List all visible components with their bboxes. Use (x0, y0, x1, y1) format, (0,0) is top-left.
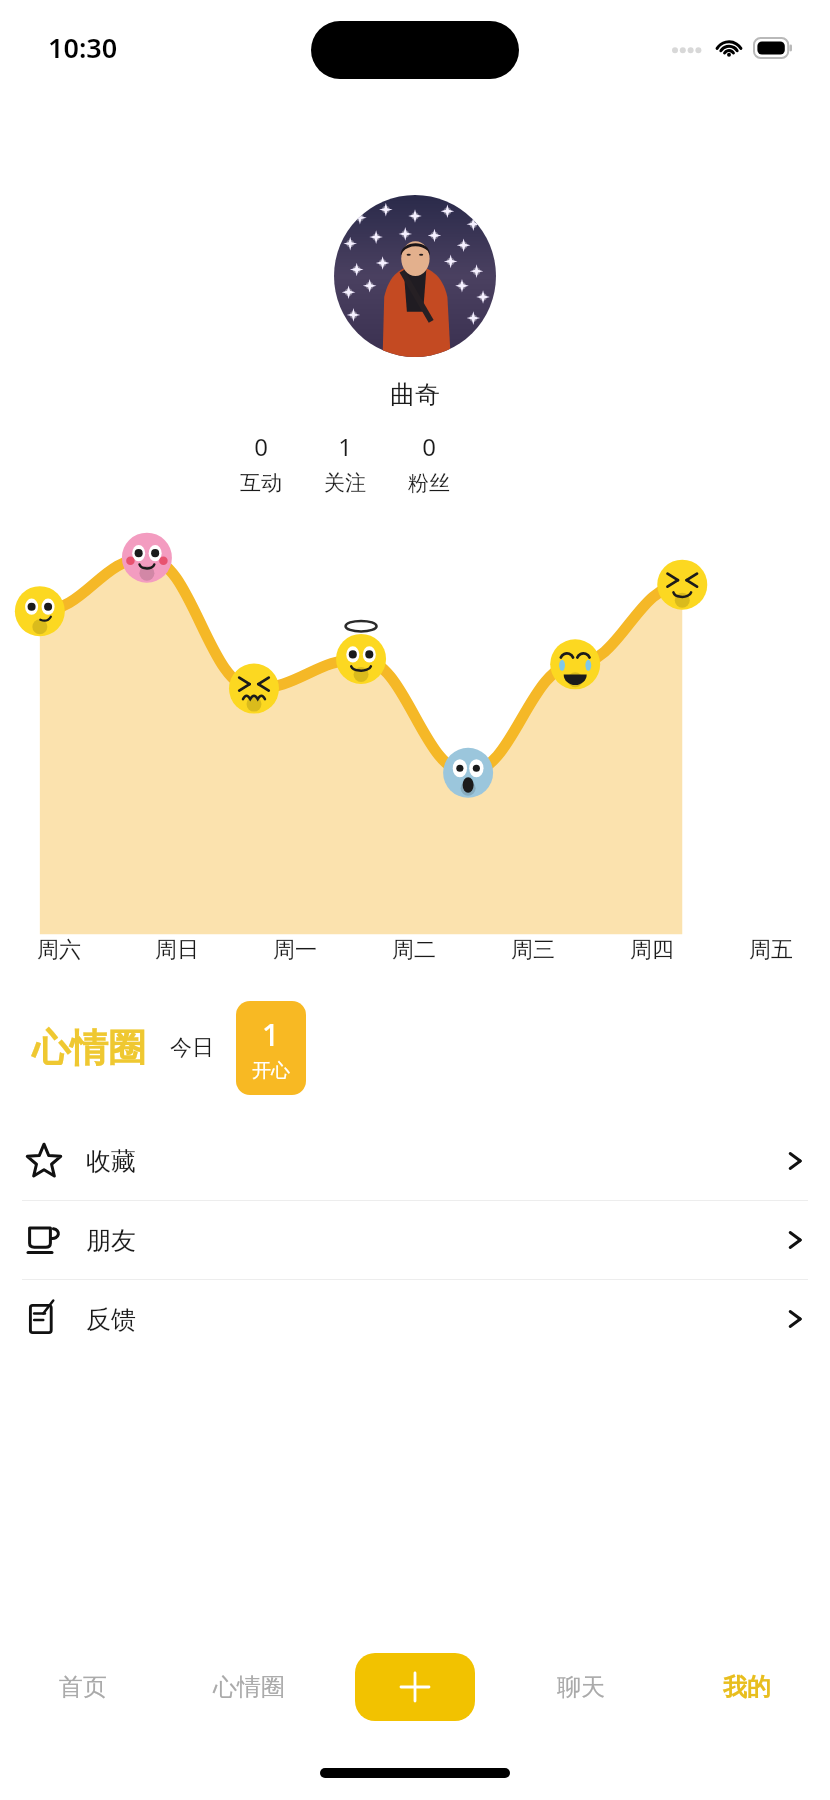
staticText: 周三 (511, 936, 555, 964)
button[interactable]: 1 (236, 1001, 306, 1095)
staticText: 首页 (59, 1672, 107, 1702)
button[interactable]: 首页 (0, 1622, 166, 1752)
button[interactable]: 0 (228, 430, 294, 496)
button[interactable]: 朋友 (0, 1201, 830, 1279)
staticText: 周二 (392, 936, 436, 964)
staticText: 粉丝 (408, 470, 450, 496)
staticText: 反馈 (86, 1304, 136, 1335)
button[interactable]: 0 (396, 430, 462, 496)
staticText: 聊天 (557, 1672, 605, 1702)
staticText: 心情圈 (213, 1672, 285, 1702)
staticText: 周五 (749, 936, 793, 964)
button[interactable]: 心情圈 (166, 1622, 332, 1752)
staticText: 周四 (630, 936, 674, 964)
staticText: 我的 (723, 1672, 771, 1702)
button[interactable]: 聊天 (498, 1622, 664, 1752)
button[interactable]: 1 (312, 430, 378, 496)
button[interactable]: Profile photo (334, 195, 496, 357)
staticText: 1 (262, 1014, 280, 1055)
staticText: 互动 (240, 470, 282, 496)
button[interactable]: 反馈 (0, 1280, 830, 1358)
staticText: 0 (422, 430, 436, 463)
staticText: 开心 (252, 1059, 290, 1083)
staticText: 关注 (324, 470, 366, 496)
staticText: 周日 (155, 936, 199, 964)
staticText: 10:30 (48, 29, 118, 66)
staticText: 曲奇 (390, 379, 440, 410)
staticText: 周一 (273, 936, 317, 964)
staticText: 1 (338, 430, 352, 463)
staticText: 周六 (37, 936, 81, 964)
staticText: 0 (254, 430, 268, 463)
button[interactable]: Add (355, 1653, 475, 1721)
staticText: 今日 (170, 1034, 214, 1062)
staticText: 朋友 (86, 1225, 136, 1256)
button[interactable]: 收藏 (0, 1122, 830, 1200)
button[interactable]: 心情圈 (32, 1024, 146, 1072)
button[interactable]: 我的 (664, 1622, 830, 1752)
staticText: 收藏 (86, 1146, 136, 1177)
